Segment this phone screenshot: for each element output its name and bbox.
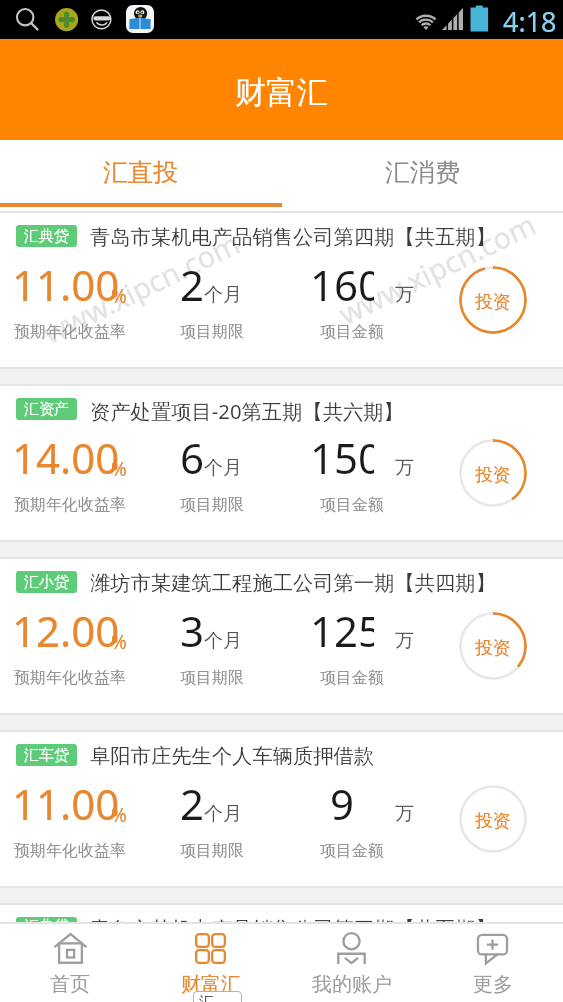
button[interactable]: 投资 [459,266,527,334]
staticText: 投资 [475,464,511,487]
staticText: 预期年化收益率 [14,495,126,515]
staticText: 汇典贷 [24,227,69,246]
staticText: 125 [310,602,374,659]
staticText: 160 [310,256,374,313]
staticText: 个月 [204,802,242,826]
staticText: % [111,802,127,828]
staticText: 资产处置项目-20第五期【共六期】 [90,397,404,425]
button[interactable]: 汇车贷 [0,732,563,886]
staticText: % [111,456,127,482]
button[interactable]: 汇直投 [0,140,281,211]
staticText: 项目金额 [320,495,384,515]
staticText: 预期年化收益率 [14,668,126,688]
staticText: 个月 [204,283,242,307]
staticText: 潍坊市某建筑工程施工公司第一期【共四期】 [90,570,496,596]
staticText: 青岛市某机电产品销售公司第三期【共五期】 [90,916,496,922]
staticText: 预期年化收益率 [14,322,126,342]
staticText: 3 [180,602,205,659]
staticText: 项目期限 [180,668,244,688]
staticText: 项目期限 [180,322,244,342]
staticText: 万 [395,283,414,307]
staticText: 汇 [199,993,214,1002]
staticText: 2 [180,775,205,832]
staticText: 汇直投 [103,157,178,188]
staticText: 项目期限 [180,495,244,515]
staticText: 阜阳市庄先生个人车辆质押借款 [90,743,375,769]
staticText: 4:18 [503,3,557,40]
staticText: 投资 [475,637,511,660]
staticText: 6 [180,429,205,486]
button[interactable]: 投资 [459,439,527,507]
staticText: 11.00 [12,256,120,313]
staticText: 9 [330,775,355,832]
staticText: 投资 [475,291,511,314]
staticText: 财富汇 [235,73,328,112]
staticText: 个月 [204,456,242,480]
staticText: 汇车贷 [24,746,69,765]
staticText: 首页 [50,972,90,997]
button[interactable]: 汇典贷 [0,905,563,922]
staticText: 我的账户 [312,972,392,997]
button[interactable]: 汇消费 [281,140,563,211]
staticText: 个月 [204,629,242,653]
staticText: 汇典贷 [24,917,69,922]
staticText: www.xipcn.com [36,223,246,352]
staticText: 14.00 [12,429,120,486]
staticText: 万 [395,456,414,480]
staticText: 投资 [475,810,511,833]
staticText: 汇资产 [24,400,69,419]
staticText: 财富汇 [181,972,241,997]
staticText: % [111,283,127,309]
staticText: 青岛市某机电产品销售公司第四期【共五期】 [90,224,496,250]
button[interactable]: 汇资产 [0,386,563,540]
staticText: 项目金额 [320,322,384,342]
staticText: 更多 [473,972,513,997]
staticText: 预期年化收益率 [14,841,126,861]
button[interactable]: 投资 [459,785,527,853]
staticText: 150 [310,429,374,486]
staticText: 项目期限 [180,841,244,861]
staticText: www.xipcn.com [332,211,542,333]
button[interactable]: 汇小贷 [0,559,563,713]
other: Search [16,8,40,32]
staticText: 汇消费 [385,157,460,188]
staticText: 万 [395,629,414,653]
staticText: 汇小贷 [24,573,69,592]
button[interactable]: 更多 [422,924,563,1002]
staticText: % [111,629,127,655]
staticText: 万 [395,802,414,826]
staticText: 2 [180,256,205,313]
button[interactable]: 我的账户 [281,924,422,1002]
button[interactable]: 投资 [459,612,527,680]
staticText: 12.00 [12,602,120,659]
button[interactable]: 首页 [0,924,140,1002]
staticText: 项目金额 [320,668,384,688]
button[interactable]: 财富汇 [140,924,281,1002]
staticText: 11.00 [12,775,120,832]
button[interactable]: www.xipcn.com [0,213,563,367]
staticText: 项目金额 [320,841,384,861]
